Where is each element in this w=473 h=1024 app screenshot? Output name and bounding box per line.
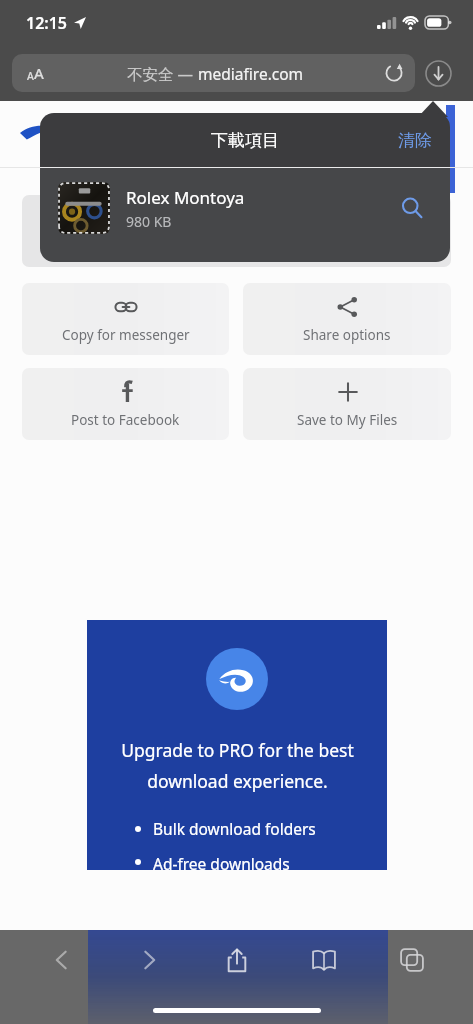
staticText: Bulk download folders (153, 818, 316, 839)
button[interactable]: Back (36, 934, 88, 986)
button[interactable]: Forward (123, 934, 175, 986)
button[interactable]: Post to Facebook (22, 368, 229, 440)
staticText: 12:15 (26, 12, 68, 34)
staticText: download experience. (147, 769, 328, 793)
staticText: Not working? (114, 221, 209, 241)
staticText: mediafire.com (198, 63, 304, 84)
button[interactable]: Upgrade to PRO for the best (87, 620, 387, 870)
staticText: Save to My Files (297, 411, 398, 429)
button[interactable]: Not working? (22, 195, 451, 267)
button[interactable]: Copy for messenger (22, 283, 229, 355)
button[interactable]: A (12, 54, 415, 92)
button[interactable]: Downloads (415, 50, 461, 96)
button[interactable]: Search download (392, 188, 432, 228)
button[interactable]: Bookmarks (298, 934, 350, 986)
button[interactable]: 清除 (398, 130, 432, 151)
staticText: Share options (303, 326, 391, 344)
staticText: Post to Facebook (71, 411, 180, 429)
staticText: A (34, 63, 44, 83)
staticText: 980 KB (126, 212, 172, 231)
staticText: Upgrade to PRO for the best (121, 738, 354, 762)
staticText: 下載項目 (211, 130, 279, 151)
staticText: Copy for messenger (62, 326, 190, 344)
staticText: A (27, 69, 34, 83)
button[interactable]: Save to My Files (243, 368, 451, 440)
button[interactable]: Share (211, 934, 263, 986)
button[interactable]: Rolex Montoya (58, 168, 432, 248)
staticText: 不安全 — (127, 63, 198, 84)
staticText: Rolex Montoya (126, 186, 245, 209)
staticText: 清除 (398, 130, 432, 151)
button[interactable]: Reload (373, 54, 415, 92)
staticText: Ad-free downloads (153, 853, 290, 870)
button[interactable]: Share options (243, 283, 451, 355)
button[interactable]: Tabs (386, 934, 438, 986)
